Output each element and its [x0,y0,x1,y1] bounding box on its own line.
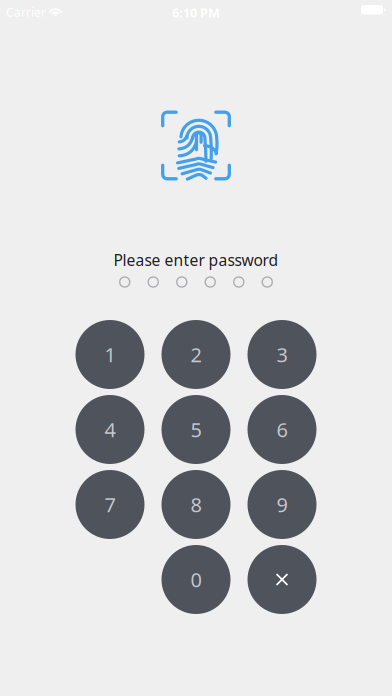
button[interactable]: 4 [75,395,144,464]
staticText: 1 [104,341,115,368]
staticText: 9 [276,491,287,518]
button[interactable]: 3 [247,320,316,389]
button[interactable]: 8 [161,470,230,539]
staticText: 2 [190,341,201,368]
staticText: 8 [190,491,201,518]
button[interactable]: 9 [247,470,316,539]
staticText: 6:10 PM [172,4,220,21]
button[interactable]: Delete [247,545,316,614]
button[interactable]: 1 [75,320,144,389]
staticText: 4 [104,416,115,443]
staticText: 7 [104,491,115,518]
staticText: Please enter password [113,249,278,271]
button[interactable]: 0 [161,545,230,614]
staticText: Carrier [6,4,46,20]
staticText: 3 [276,341,287,368]
button[interactable]: 2 [161,320,230,389]
button[interactable]: 7 [75,470,144,539]
staticText: 6 [276,416,287,443]
button[interactable]: 5 [161,395,230,464]
button[interactable]: 6 [247,395,316,464]
staticText: 5 [190,416,201,443]
staticText: 0 [190,566,201,593]
